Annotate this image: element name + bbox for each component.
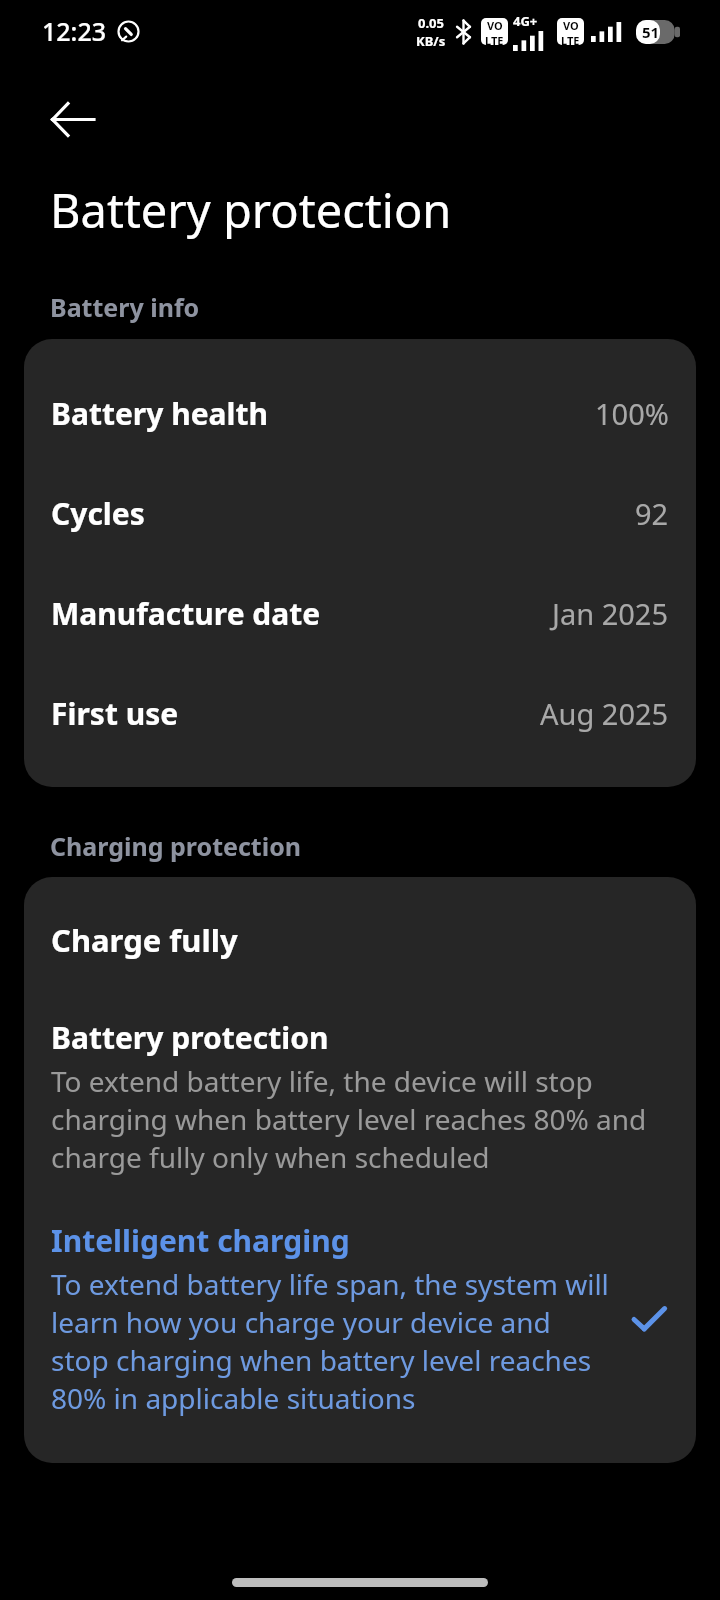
staticText: 100% bbox=[595, 394, 669, 433]
staticText: VO bbox=[487, 18, 503, 33]
staticText: VO bbox=[563, 18, 579, 33]
other: Selected bbox=[626, 1296, 672, 1342]
button[interactable]: Back bbox=[34, 80, 112, 158]
button[interactable]: Battery health bbox=[24, 363, 696, 463]
button[interactable]: Intelligent charging bbox=[24, 1176, 696, 1463]
staticText: 92 bbox=[635, 494, 669, 533]
staticText: 0.05 bbox=[418, 14, 444, 32]
button[interactable]: Manufacture date bbox=[24, 563, 696, 663]
staticText: Charging protection bbox=[50, 829, 302, 863]
button[interactable]: Charge fully bbox=[24, 877, 696, 975]
staticText: Cycles bbox=[51, 493, 145, 534]
staticText: 51 bbox=[642, 22, 660, 42]
staticText: Aug 2025 bbox=[540, 694, 669, 733]
staticText: Manufacture date bbox=[51, 593, 321, 634]
staticText: Battery info bbox=[50, 290, 200, 324]
staticText: Battery protection bbox=[50, 178, 452, 242]
staticText: Intelligent charging bbox=[51, 1220, 350, 1261]
staticText: 12:23 bbox=[42, 14, 107, 48]
button[interactable]: Cycles bbox=[24, 463, 696, 563]
staticText: Charge fully bbox=[51, 919, 238, 961]
staticText: Jan 2025 bbox=[552, 594, 669, 633]
button[interactable]: First use bbox=[24, 663, 696, 763]
button[interactable]: Battery protection bbox=[24, 975, 696, 1176]
staticText: 4G+ bbox=[513, 12, 538, 30]
staticText: LTE bbox=[485, 33, 504, 45]
staticText: Battery protection bbox=[51, 1017, 329, 1058]
staticText: To extend battery life, the device will … bbox=[51, 1062, 669, 1176]
staticText: LTE bbox=[561, 33, 580, 45]
staticText: Battery health bbox=[51, 393, 269, 434]
staticText: To extend battery life span, the system … bbox=[51, 1265, 614, 1417]
staticText: First use bbox=[51, 693, 179, 734]
staticText: KB/s bbox=[416, 32, 446, 50]
